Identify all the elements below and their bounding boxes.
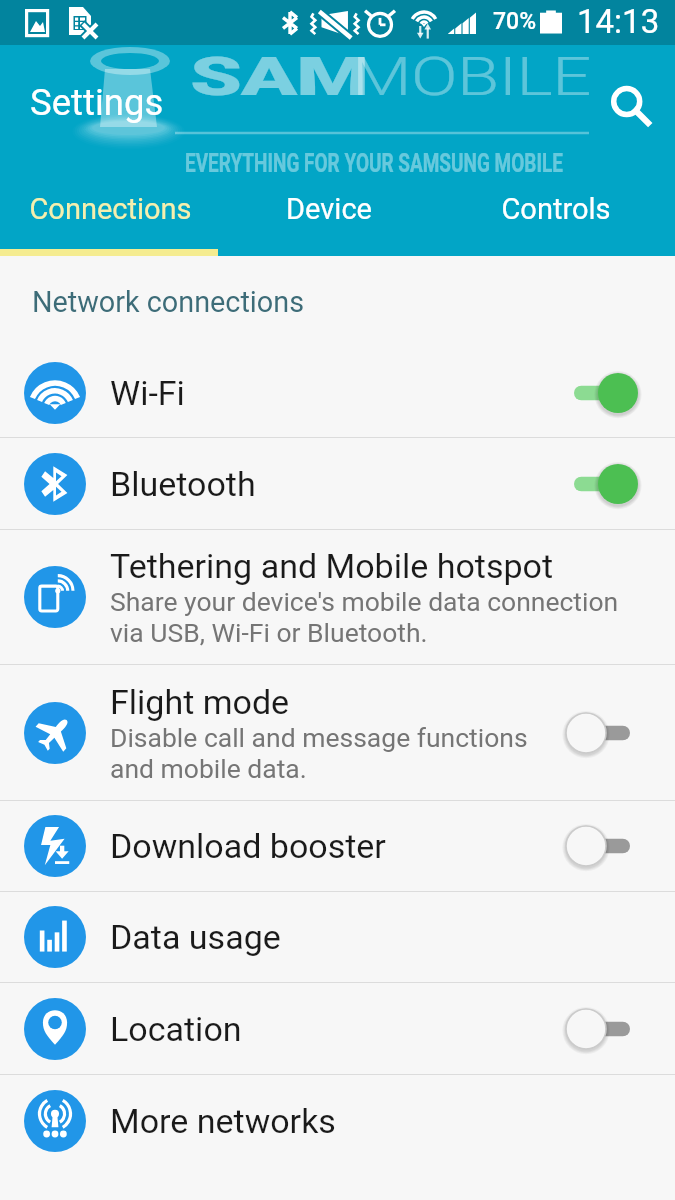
- staticText: 70%: [493, 8, 537, 35]
- staticText: Share your device's mobile data connecti…: [110, 586, 619, 648]
- staticText: Data usage: [110, 917, 281, 957]
- staticText: Tethering and Mobile hotspot: [110, 546, 554, 586]
- button[interactable]: Bluetooth: [0, 438, 675, 529]
- staticText: Connections: [29, 192, 192, 226]
- button[interactable]: More networks: [0, 1075, 675, 1166]
- staticText: Settings: [30, 81, 164, 124]
- staticText: 14:13: [577, 2, 660, 41]
- staticText: Download booster: [110, 826, 386, 866]
- button[interactable]: Wi-Fi: [0, 348, 675, 437]
- button[interactable]: Download booster: [0, 801, 675, 891]
- staticText: Device: [286, 192, 372, 226]
- button[interactable]: Tethering and Mobile hotspot: [0, 530, 675, 664]
- staticText: Location: [110, 1009, 242, 1049]
- staticText: EVERYTHING FOR YOUR SAMSUNG MOBILE: [185, 149, 563, 178]
- staticText: Wi-Fi: [110, 373, 185, 413]
- button[interactable]: Connections: [0, 211, 220, 256]
- staticText: SAM: [190, 45, 369, 108]
- button[interactable]: Data usage: [0, 892, 675, 982]
- staticText: Flight mode: [110, 682, 290, 722]
- staticText: Network connections: [32, 285, 305, 319]
- button[interactable]: Search: [598, 67, 656, 125]
- button[interactable]: Flight mode: [0, 665, 675, 800]
- button[interactable]: Controls: [437, 211, 675, 256]
- staticText: More networks: [110, 1101, 336, 1141]
- button[interactable]: Location: [0, 983, 675, 1074]
- button[interactable]: Device: [220, 211, 437, 256]
- staticText: Bluetooth: [110, 464, 256, 504]
- staticText: Disable call and message functions and m…: [110, 722, 528, 784]
- staticText: MOBILE: [352, 45, 591, 108]
- staticText: Controls: [501, 192, 611, 226]
